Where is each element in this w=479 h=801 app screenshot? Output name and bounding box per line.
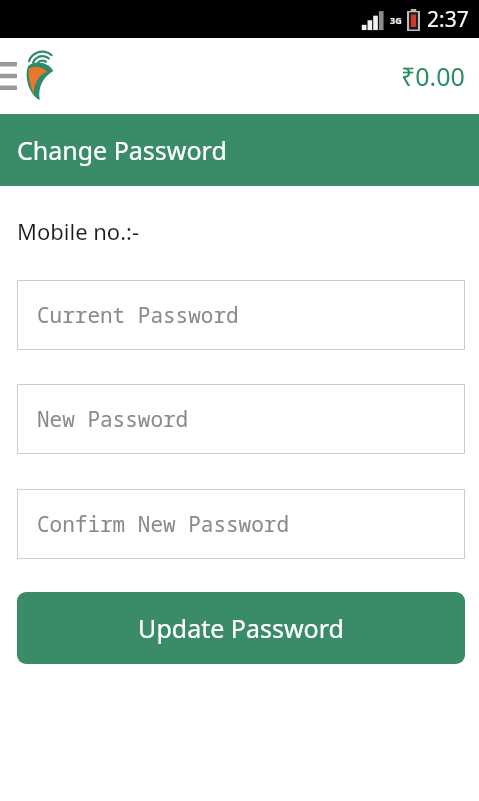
staticText: Confirm New Password: [37, 510, 289, 539]
staticText: 3G: [390, 14, 402, 26]
staticText: Mobile no.:-: [17, 216, 140, 246]
button[interactable]: Confirm New Password: [17, 489, 465, 559]
button[interactable]: Open navigation menu: [0, 38, 60, 114]
staticText: Change Password: [17, 133, 227, 167]
button[interactable]: ₹0.00: [401, 59, 479, 93]
button[interactable]: Current Password: [17, 280, 465, 350]
staticText: New Password: [37, 405, 189, 434]
staticText: 2:37: [427, 5, 469, 34]
button[interactable]: New Password: [17, 384, 465, 454]
button[interactable]: Update Password: [17, 592, 465, 664]
staticText: Update Password: [138, 611, 344, 645]
staticText: Current Password: [37, 301, 239, 330]
staticText: ₹0.00: [401, 59, 465, 93]
